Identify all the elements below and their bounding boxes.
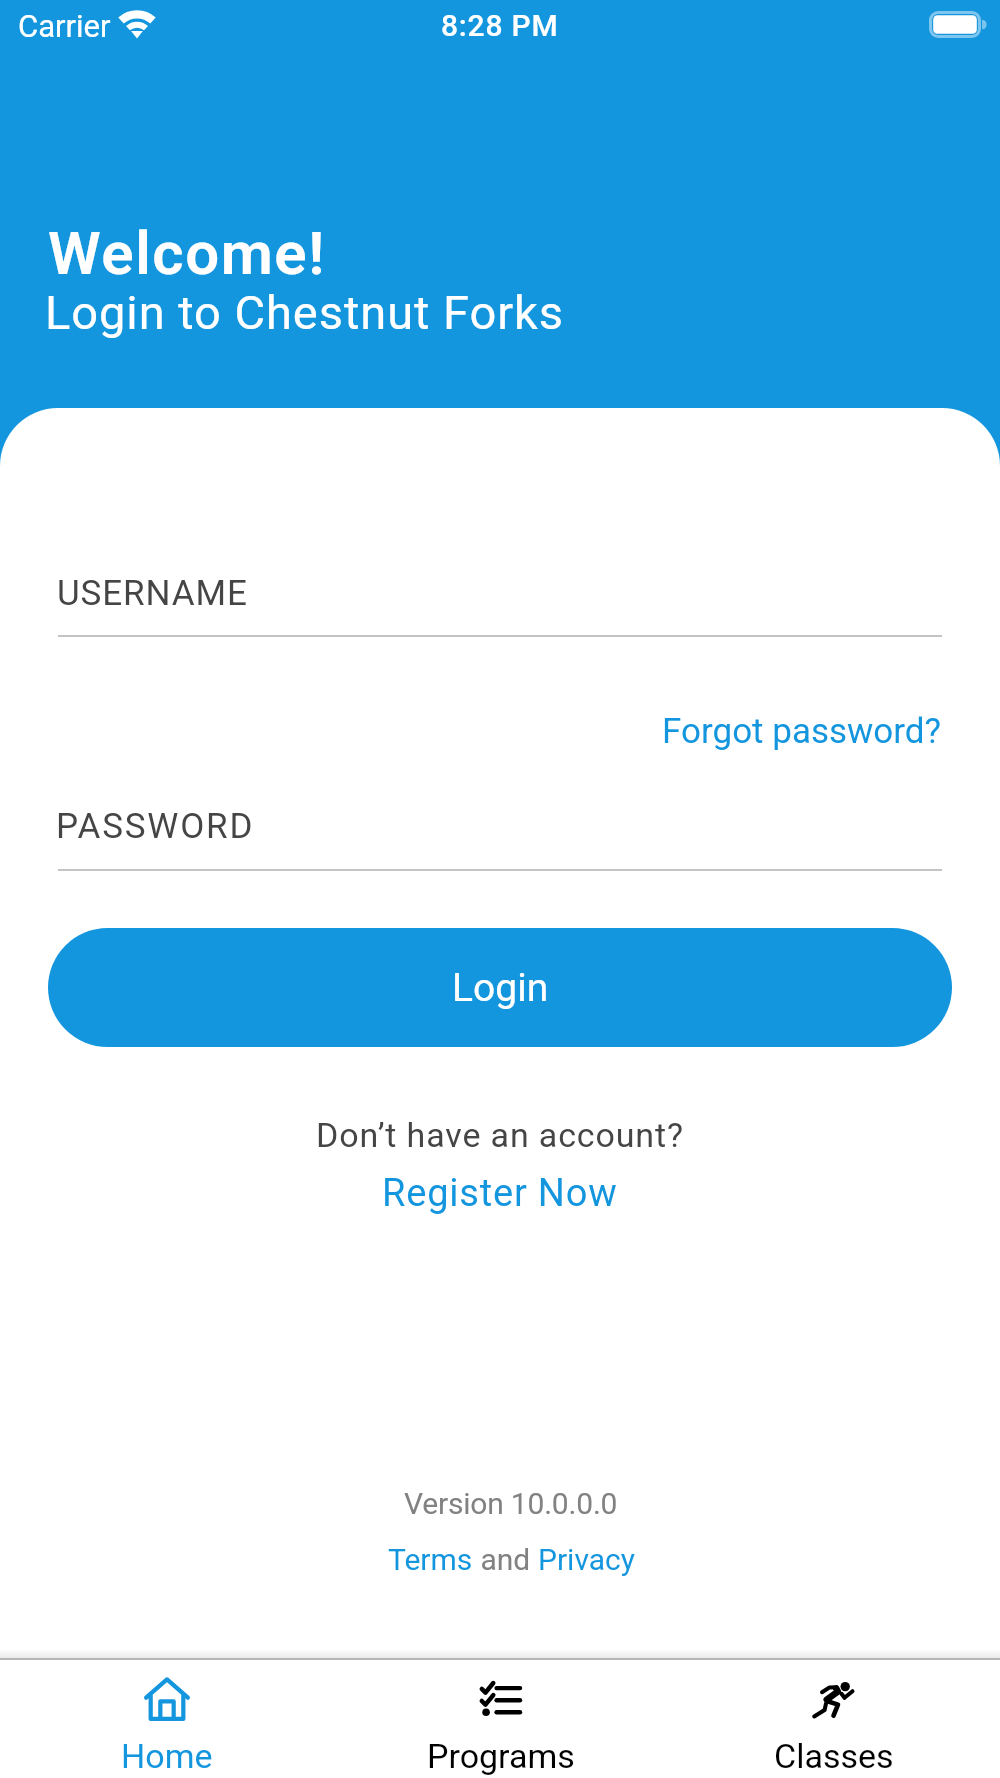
staticText: Welcome! bbox=[48, 218, 326, 288]
button[interactable]: Home bbox=[0, 1658, 334, 1702]
staticText: Login bbox=[452, 965, 549, 1011]
staticText: Programs bbox=[427, 1736, 575, 1776]
staticText: Classes bbox=[774, 1736, 894, 1776]
button[interactable]: Login bbox=[48, 928, 952, 1047]
button[interactable]: Register Now bbox=[382, 1171, 618, 1216]
button[interactable]: Forgot password? bbox=[662, 711, 942, 752]
button[interactable]: Programs bbox=[334, 1658, 667, 1702]
button[interactable]: Classes bbox=[667, 1658, 1000, 1702]
staticText: 8:28 PM bbox=[441, 8, 559, 43]
button[interactable]: USERNAME bbox=[58, 563, 942, 637]
staticText: Login to Chestnut Forks bbox=[45, 285, 565, 340]
button[interactable]: PASSWORD bbox=[58, 796, 942, 870]
staticText: USERNAME bbox=[57, 573, 248, 614]
staticText: Don’t have an account? bbox=[316, 1115, 684, 1155]
staticText: and bbox=[473, 1542, 538, 1577]
staticText: Version 10.0.0.0 bbox=[404, 1486, 618, 1521]
staticText: Home bbox=[121, 1736, 213, 1776]
staticText: Carrier bbox=[18, 8, 111, 44]
button[interactable]: Privacy bbox=[538, 1542, 635, 1577]
staticText: PASSWORD bbox=[56, 806, 255, 847]
button[interactable]: Terms bbox=[388, 1542, 473, 1577]
